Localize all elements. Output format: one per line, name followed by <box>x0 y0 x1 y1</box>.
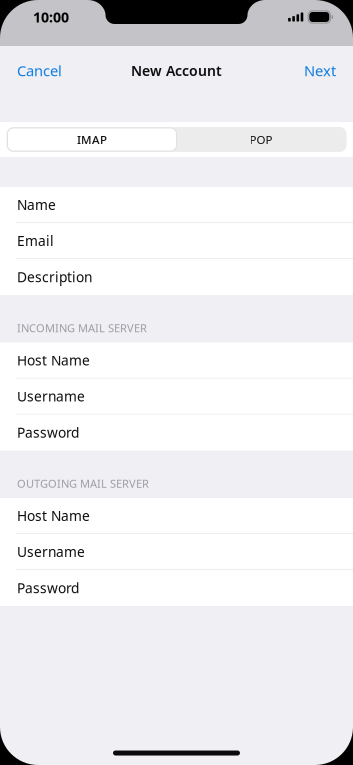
button[interactable]: Cancel <box>17 52 62 88</box>
button[interactable]: IMAP <box>7 128 176 151</box>
staticText: IMAP <box>77 132 107 147</box>
staticText: Next <box>304 60 336 80</box>
staticText: 10:00 <box>33 7 69 27</box>
button[interactable]: Host Name <box>0 498 353 534</box>
staticText: Host Name <box>17 351 90 369</box>
button[interactable]: Description <box>0 259 353 295</box>
staticText: Host Name <box>17 506 90 525</box>
staticText: Password <box>17 423 79 442</box>
staticText: Cancel <box>17 60 62 80</box>
button[interactable]: Next <box>304 52 336 88</box>
staticText: INCOMING MAIL SERVER <box>17 320 147 335</box>
staticText: POP <box>249 132 272 147</box>
button[interactable]: Password <box>0 414 353 450</box>
staticText: New Account <box>131 61 222 80</box>
staticText: OUTGOING MAIL SERVER <box>17 476 149 491</box>
staticText: Username <box>17 542 85 561</box>
staticText: Email <box>17 231 54 250</box>
button[interactable]: Host Name <box>0 342 353 378</box>
button[interactable]: Password <box>0 570 353 606</box>
button[interactable]: Username <box>0 378 353 414</box>
button[interactable]: Name <box>0 187 353 223</box>
staticText: Name <box>17 195 56 214</box>
button[interactable]: Username <box>0 534 353 570</box>
button[interactable]: Email <box>0 223 353 259</box>
button[interactable]: POP <box>176 128 345 151</box>
staticText: Password <box>17 579 79 597</box>
staticText: Description <box>17 268 92 286</box>
staticText: Username <box>17 387 85 405</box>
